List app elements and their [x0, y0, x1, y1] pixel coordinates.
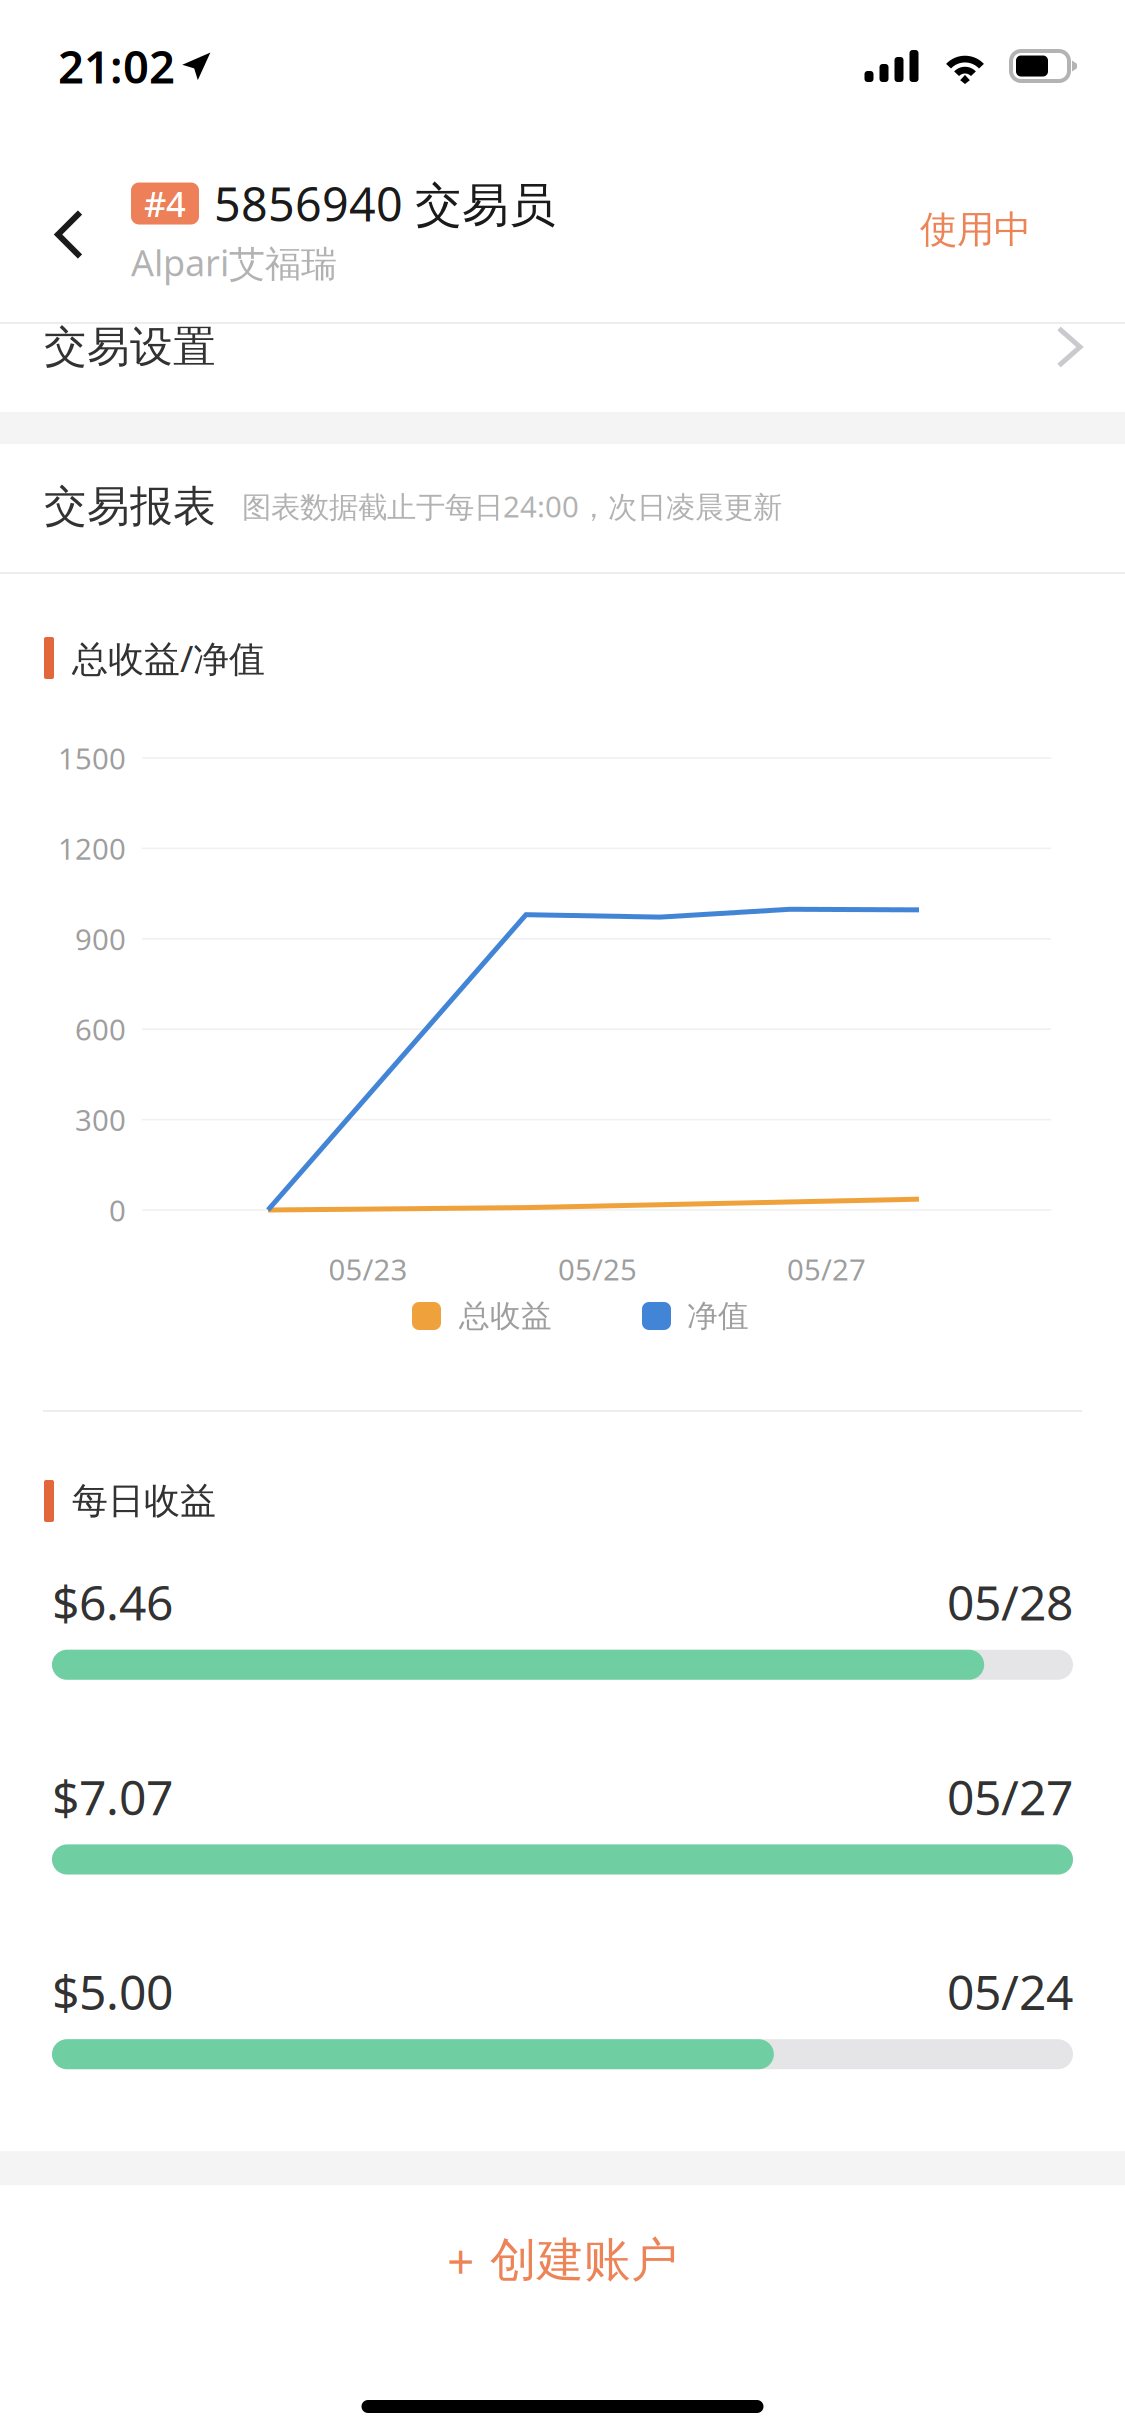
staticText: 创建账户 — [490, 2232, 678, 2289]
staticText: 交易报表 — [44, 480, 216, 533]
staticText: 净值 — [687, 1297, 749, 1335]
staticText: 21:02 — [58, 36, 175, 96]
button[interactable]: 交易设置 — [0, 324, 1125, 412]
staticText: 总收益 — [459, 1297, 552, 1335]
staticText: 05/27 — [787, 1249, 866, 1288]
button[interactable]: Back — [0, 167, 131, 256]
staticText: 交易设置 — [44, 321, 216, 373]
staticText: $7.07 — [52, 1765, 173, 1828]
staticText: + — [447, 2228, 474, 2292]
staticText: 05/25 — [558, 1249, 637, 1288]
staticText: 900 — [75, 919, 126, 958]
staticText: 05/28 — [947, 1570, 1073, 1634]
staticText: 0 — [109, 1190, 126, 1229]
staticText: $6.46 — [52, 1570, 173, 1634]
staticText: 1200 — [58, 829, 126, 868]
staticText: 05/27 — [947, 1765, 1073, 1828]
staticText: $5.00 — [52, 1959, 173, 2023]
staticText: #4 — [144, 180, 186, 226]
button[interactable]: + — [0, 2185, 1125, 2335]
staticText: 600 — [75, 1010, 126, 1049]
staticText: 总收益/净值 — [72, 634, 265, 682]
button[interactable]: 使用中 — [920, 167, 1125, 252]
staticText: 图表数据截止于每日24:00，次日凌晨更新 — [242, 487, 782, 526]
staticText: 300 — [75, 1100, 126, 1139]
staticText: 使用中 — [920, 206, 1031, 252]
staticText: 05/24 — [947, 1959, 1073, 2023]
staticText: 5856940 交易员 — [214, 172, 556, 234]
staticText: 05/23 — [328, 1249, 407, 1288]
staticText: Alpari艾福瑞 — [131, 238, 337, 286]
staticText: 每日收益 — [72, 1479, 216, 1523]
staticText: 1500 — [58, 738, 126, 777]
